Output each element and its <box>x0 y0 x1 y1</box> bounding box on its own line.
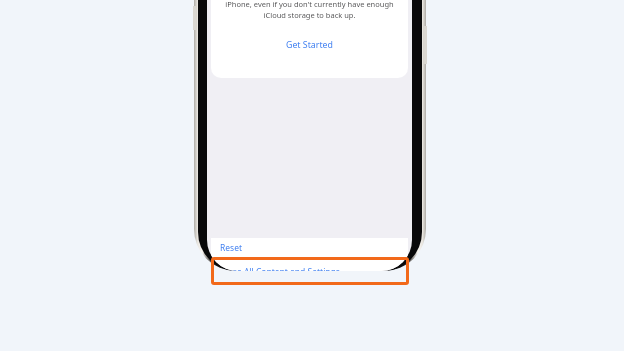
staticText: Reset <box>220 242 243 254</box>
staticText: Erase All Content and Settings <box>220 266 340 271</box>
button[interactable]: Erase All Content and Settings <box>211 259 408 271</box>
staticText: Make sure everything's ready to transfer… <box>222 0 397 21</box>
button[interactable]: Get Started <box>276 36 343 54</box>
staticText: Get Started <box>286 39 333 51</box>
button[interactable]: Reset <box>211 238 408 258</box>
other: Erase All Content and Settings highlight… <box>211 257 409 285</box>
